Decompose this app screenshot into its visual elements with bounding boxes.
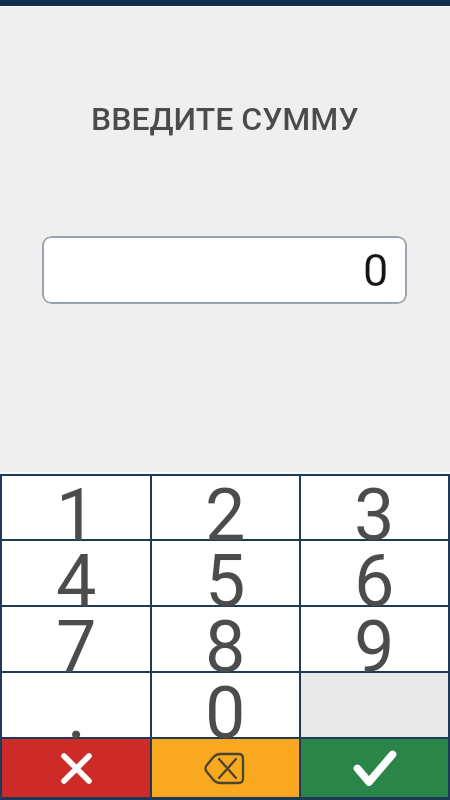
staticText: 0 bbox=[205, 671, 246, 756]
staticText: ВВЕДИТЕ СУММУ bbox=[91, 100, 359, 138]
button[interactable]: 7 bbox=[2, 607, 150, 671]
staticText: 0 bbox=[363, 244, 389, 297]
staticText: . bbox=[67, 671, 86, 756]
button[interactable] bbox=[2, 739, 150, 797]
staticText: 8 bbox=[205, 605, 246, 690]
button[interactable] bbox=[152, 739, 299, 797]
button[interactable]: 9 bbox=[301, 607, 448, 671]
staticText: 7 bbox=[56, 605, 97, 690]
staticText: 3 bbox=[354, 473, 395, 558]
button[interactable]: 2 bbox=[152, 476, 299, 539]
button[interactable]: 1 bbox=[2, 476, 150, 539]
button[interactable]: 5 bbox=[152, 541, 299, 605]
staticText: 4 bbox=[56, 539, 97, 624]
staticText: 2 bbox=[205, 473, 246, 558]
staticText: 9 bbox=[354, 605, 395, 690]
staticText: 6 bbox=[354, 539, 395, 624]
button[interactable]: . bbox=[2, 673, 150, 737]
button[interactable] bbox=[301, 739, 448, 797]
button[interactable]: 4 bbox=[2, 541, 150, 605]
button[interactable]: 0 bbox=[152, 673, 299, 737]
button[interactable]: 6 bbox=[301, 541, 448, 605]
button[interactable]: 0 bbox=[42, 236, 407, 304]
staticText: 5 bbox=[205, 539, 246, 624]
button[interactable]: 3 bbox=[301, 476, 448, 539]
button[interactable]: 8 bbox=[152, 607, 299, 671]
staticText: 1 bbox=[56, 473, 97, 558]
